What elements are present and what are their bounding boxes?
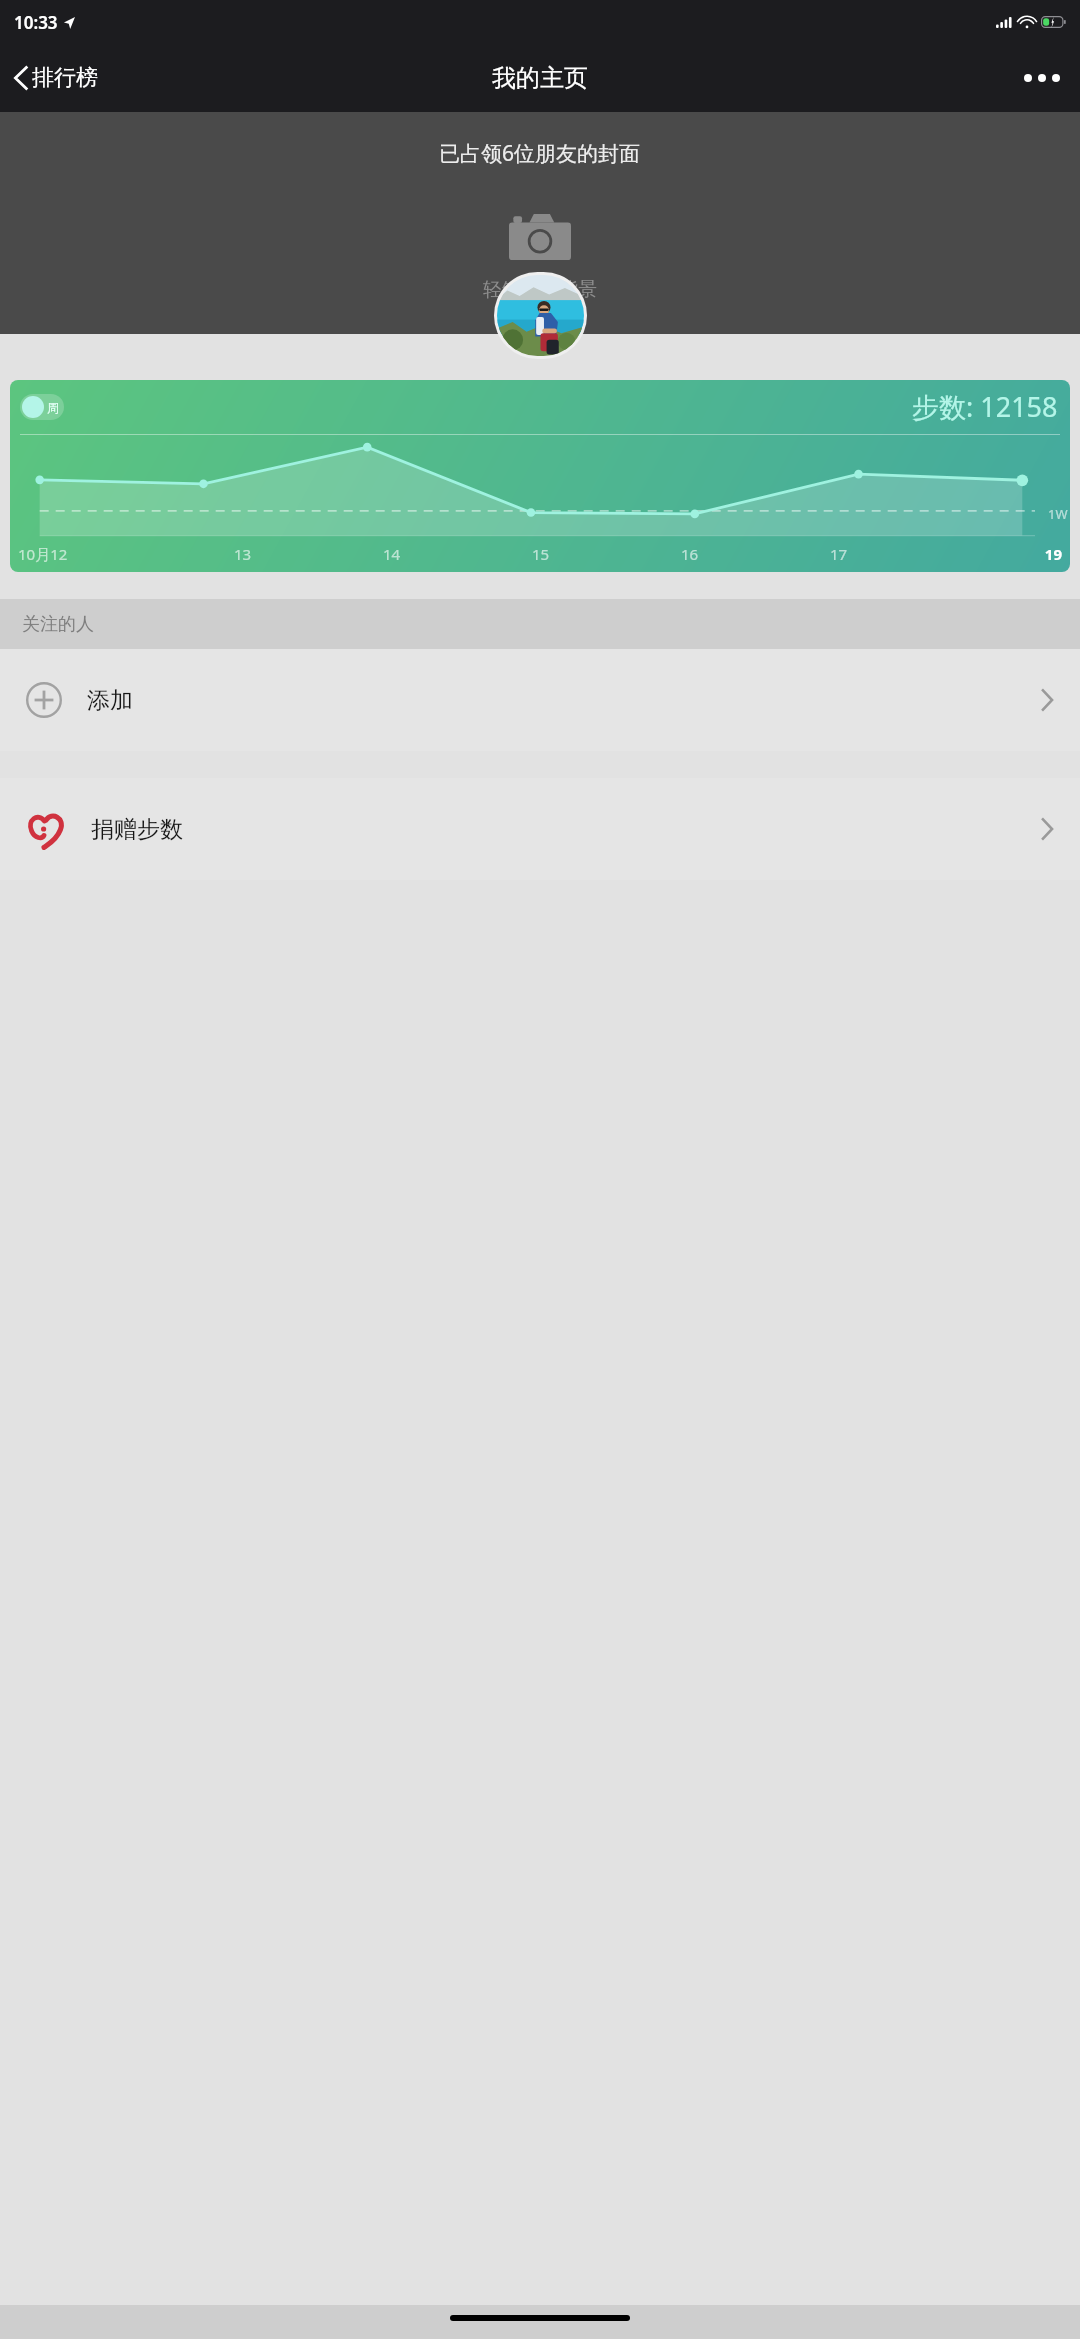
staticText: 1W [1048, 505, 1068, 523]
staticText: 步数: 12158 [912, 388, 1058, 425]
button[interactable]: 周 [20, 394, 64, 420]
staticText: 17 [764, 544, 913, 564]
staticText: 14 [317, 544, 466, 564]
button[interactable]: 周 [10, 380, 1070, 572]
staticText: 捐赠步数 [91, 815, 183, 844]
button[interactable]: 捐赠步数 [0, 778, 1080, 880]
button[interactable]: 添加 [0, 649, 1080, 751]
button[interactable]: 排行榜 [0, 44, 108, 112]
button[interactable]: 已占领6位朋友的封面 [0, 112, 1080, 334]
staticText: 周 [47, 400, 59, 415]
staticText: 10月12 [18, 544, 168, 564]
staticText: 16 [615, 544, 764, 564]
staticText: 15 [466, 544, 615, 564]
staticText: 添加 [87, 686, 133, 715]
button[interactable]: More options [1004, 44, 1080, 112]
staticText: 13 [168, 544, 317, 564]
staticText: 我的主页 [492, 63, 588, 93]
staticText: 关注的人 [22, 613, 94, 636]
staticText: 10:33 [14, 11, 58, 34]
button[interactable]: Profile photo [497, 275, 584, 356]
staticText: 已占领6位朋友的封面 [439, 139, 641, 168]
staticText: 19 [913, 544, 1062, 564]
staticText: 轻触设置背景 [483, 278, 597, 302]
staticText: 排行榜 [32, 64, 98, 92]
